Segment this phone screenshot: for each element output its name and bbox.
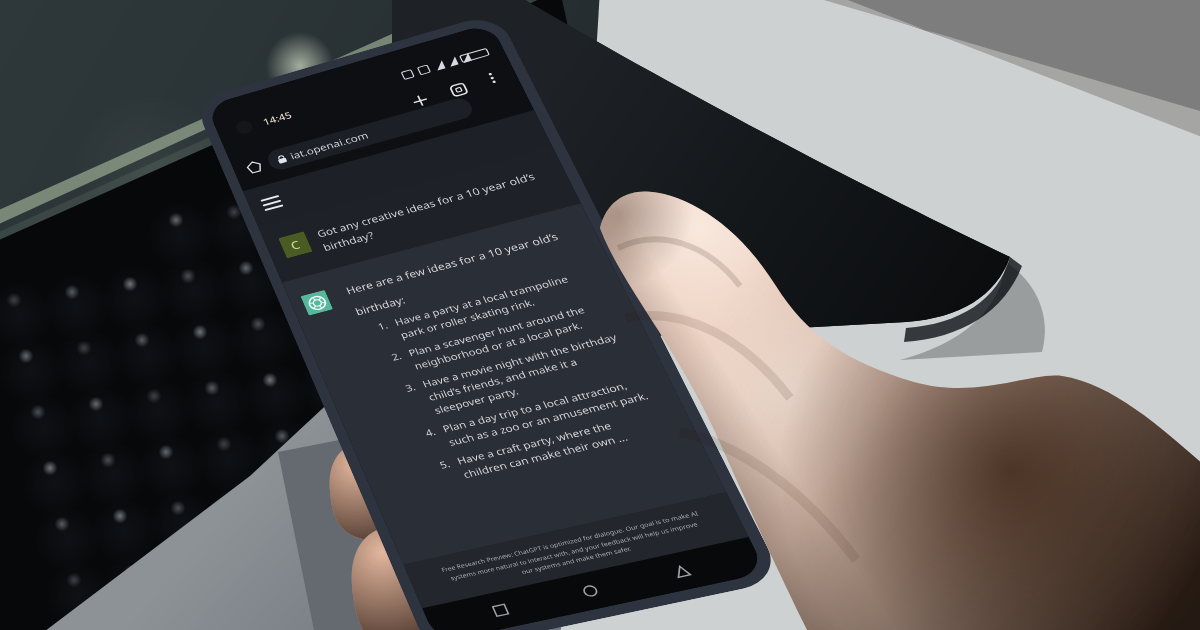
staticText: 2. bbox=[91, 404, 102, 420]
button[interactable]: Tabs bbox=[268, 74, 298, 104]
staticText: Plan a day trip to a local attraction, s… bbox=[110, 508, 321, 543]
staticText: Have a movie night with the birthday chi… bbox=[110, 447, 321, 500]
staticText: Got any creative ideas for a 10 year old… bbox=[71, 220, 334, 258]
staticText: Have a craft party, where the children c… bbox=[110, 551, 321, 586]
staticText: Plan a scavenger hunt around the neighbo… bbox=[110, 404, 321, 439]
button[interactable]: More options bbox=[310, 74, 334, 98]
staticText: Have a party at a local trampoline park … bbox=[110, 361, 321, 396]
button[interactable]: New tab bbox=[224, 74, 254, 104]
button[interactable]: iat.openai.com bbox=[53, 100, 288, 130]
staticText: Here are a few ideas for a 10 year old’s… bbox=[75, 304, 321, 351]
